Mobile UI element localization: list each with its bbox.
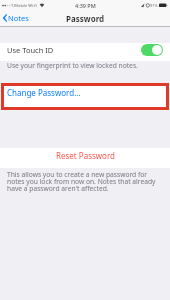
button[interactable]: Use Touch ID [0,43,170,61]
staticText: T-Mobile Wi-Fi [11,3,38,8]
staticText: Change Password... [7,87,81,98]
staticText: 91% [150,3,158,8]
staticText: Password [66,13,105,24]
staticText: 4:39 PM [75,2,96,9]
staticText: Notes [8,13,29,23]
staticText: This allows you to create a new password… [7,170,156,193]
staticText: Reset Password [56,150,115,161]
staticText: Use your fingerprint to view locked note… [7,61,138,70]
button[interactable] [141,44,163,56]
button[interactable]: Notes [0,13,29,23]
button[interactable]: Reset Password [0,148,170,168]
staticText: Use Touch ID [7,45,54,55]
button[interactable]: Change Password... [1,83,169,110]
